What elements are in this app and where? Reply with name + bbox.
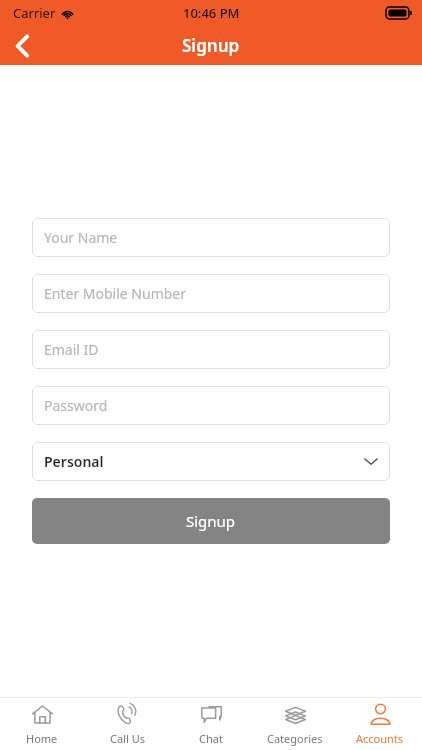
button[interactable]: Chat — [169, 698, 253, 750]
button[interactable]: Email ID — [32, 330, 390, 369]
button[interactable]: Your Name — [32, 218, 390, 257]
button[interactable]: Accounts — [338, 698, 422, 750]
staticText: Your Name — [44, 228, 118, 247]
button[interactable]: Home — [0, 698, 84, 750]
button[interactable]: Categories — [253, 698, 337, 750]
button[interactable]: Enter Mobile Number — [32, 274, 390, 313]
staticText: Personal — [44, 452, 104, 471]
staticText: Home — [26, 731, 58, 746]
staticText: Chat — [199, 731, 223, 746]
button[interactable]: Personal — [32, 442, 390, 481]
staticText: Accounts — [356, 731, 404, 746]
staticText: Call Us — [110, 731, 145, 746]
button[interactable]: Signup — [32, 498, 390, 544]
staticText: Signup — [186, 511, 236, 531]
staticText: Carrier — [13, 4, 56, 22]
staticText: Categories — [267, 731, 323, 746]
button[interactable]: Back — [0, 26, 44, 65]
button[interactable]: Password — [32, 386, 390, 425]
button[interactable]: Call Us — [85, 698, 169, 750]
staticText: 10:46 PM — [183, 4, 240, 22]
staticText: Signup — [182, 34, 240, 57]
staticText: Email ID — [44, 340, 99, 359]
staticText: Enter Mobile Number — [44, 284, 187, 303]
staticText: Password — [44, 396, 108, 415]
